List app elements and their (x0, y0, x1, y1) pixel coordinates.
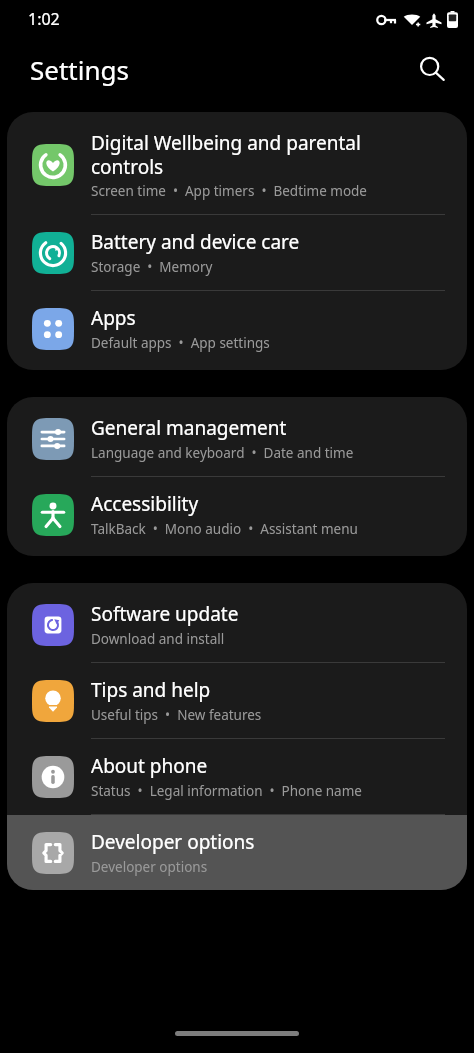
button[interactable]: Tips and help (7, 663, 467, 738)
staticText: Language and keyboard • Date and time (91, 444, 354, 462)
button[interactable]: Battery and device care (7, 215, 467, 290)
button[interactable]: Software update (7, 587, 467, 662)
button[interactable]: Apps (7, 291, 467, 366)
button[interactable]: Accessibility (7, 477, 467, 552)
staticText: Apps (91, 305, 136, 331)
staticText: 1:02 (28, 8, 60, 30)
staticText: Accessibility (91, 491, 199, 517)
staticText: Software update (91, 601, 239, 627)
button[interactable]: About phone (7, 739, 467, 814)
staticText: TalkBack • Mono audio • Assistant menu (91, 520, 358, 538)
staticText: General management (91, 415, 287, 441)
button[interactable]: Developer options (7, 815, 467, 890)
staticText: Developer options (91, 858, 208, 876)
staticText: About phone (91, 753, 208, 779)
staticText: Screen time • App timers • Bedtime mode (91, 182, 367, 200)
staticText: Developer options (91, 829, 255, 855)
staticText: Digital Wellbeing and parental controls (91, 130, 361, 179)
button[interactable]: General management (7, 401, 467, 476)
staticText: Useful tips • New features (91, 706, 262, 724)
button[interactable]: Search (408, 45, 456, 93)
staticText: Default apps • App settings (91, 334, 270, 352)
staticText: Status • Legal information • Phone name (91, 782, 362, 800)
staticText: Tips and help (91, 677, 211, 703)
button[interactable]: Digital Wellbeing and parental controls (7, 116, 467, 214)
staticText: Download and install (91, 630, 225, 648)
staticText: Storage • Memory (91, 258, 213, 276)
staticText: Battery and device care (91, 229, 300, 255)
staticText: Settings (30, 52, 129, 87)
